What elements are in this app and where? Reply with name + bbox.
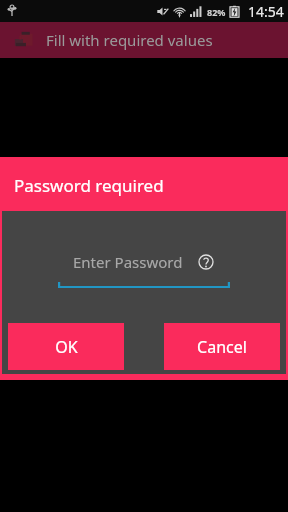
staticText: Fill with required values bbox=[46, 30, 213, 50]
button[interactable]: OK bbox=[8, 323, 124, 370]
staticText: 82% bbox=[207, 6, 226, 18]
button[interactable]: Cancel bbox=[164, 323, 280, 370]
staticText: 14:54 bbox=[248, 2, 284, 21]
staticText: Cancel bbox=[197, 336, 247, 358]
staticText: Enter Password bbox=[73, 252, 183, 272]
staticText: Password required bbox=[14, 174, 164, 197]
button[interactable]: Help bbox=[197, 253, 215, 271]
staticText: OK bbox=[55, 336, 78, 358]
button[interactable]: Enter Password bbox=[58, 242, 230, 282]
